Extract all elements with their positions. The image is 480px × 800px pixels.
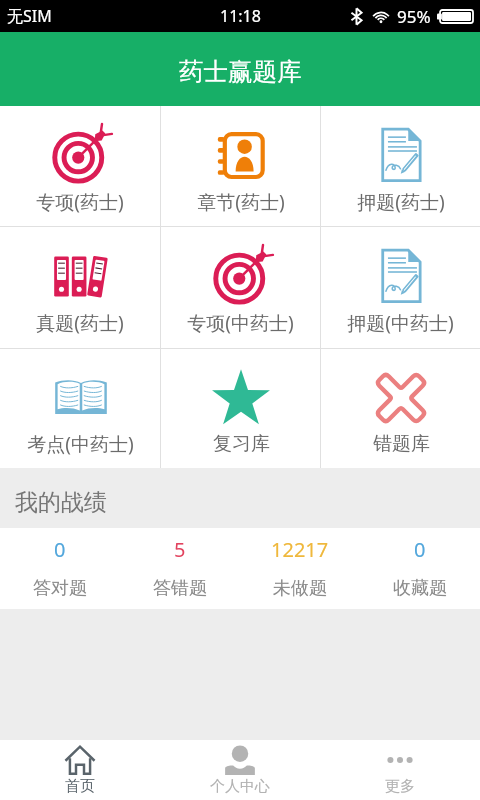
staticText: 专项(中药士)	[187, 310, 294, 336]
button[interactable]: 0	[0, 528, 120, 609]
button[interactable]: 12217	[240, 528, 360, 609]
staticText: 押题(药士)	[357, 189, 445, 215]
button[interactable]: 押题(中药士)	[321, 227, 480, 348]
staticText: 押题(中药士)	[347, 310, 454, 336]
staticText: 0	[414, 536, 426, 563]
staticText: 专项(药士)	[36, 189, 124, 215]
staticText: 真题(药士)	[36, 310, 124, 336]
staticText: 复习库	[213, 432, 270, 456]
button[interactable]: 0	[360, 528, 480, 609]
staticText: 答错题	[153, 577, 207, 600]
staticText: 无SIM	[7, 5, 52, 27]
button[interactable]: 真题(药士)	[0, 227, 160, 348]
button[interactable]: 专项(药士)	[0, 106, 160, 226]
button[interactable]: 押题(药士)	[321, 106, 480, 226]
staticText: 药士赢题库	[179, 56, 302, 87]
staticText: 首页	[65, 777, 95, 796]
staticText: 个人中心	[210, 777, 270, 796]
button[interactable]: 复习库	[161, 349, 320, 468]
staticText: 章节(药士)	[197, 189, 285, 215]
staticText: 我的战绩	[15, 488, 107, 517]
staticText: 答对题	[33, 577, 87, 600]
staticText: 收藏题	[393, 577, 447, 600]
staticText: 0	[54, 536, 66, 563]
button[interactable]: 更多	[320, 740, 480, 800]
button[interactable]: 个人中心	[160, 740, 320, 800]
staticText: 95%	[397, 5, 431, 28]
staticText: 更多	[385, 777, 415, 796]
staticText: 12217	[271, 536, 329, 563]
staticText: 11:18	[220, 5, 261, 27]
button[interactable]: 考点(中药士)	[0, 349, 160, 468]
button[interactable]: 专项(中药士)	[161, 227, 320, 348]
button[interactable]: 错题库	[321, 349, 480, 468]
staticText: 错题库	[373, 432, 430, 456]
staticText: 未做题	[273, 577, 327, 600]
button[interactable]: 章节(药士)	[161, 106, 320, 226]
button[interactable]: 5	[120, 528, 240, 609]
button[interactable]: 首页	[0, 740, 160, 800]
staticText: 5	[174, 536, 186, 563]
staticText: 考点(中药士)	[27, 431, 134, 457]
